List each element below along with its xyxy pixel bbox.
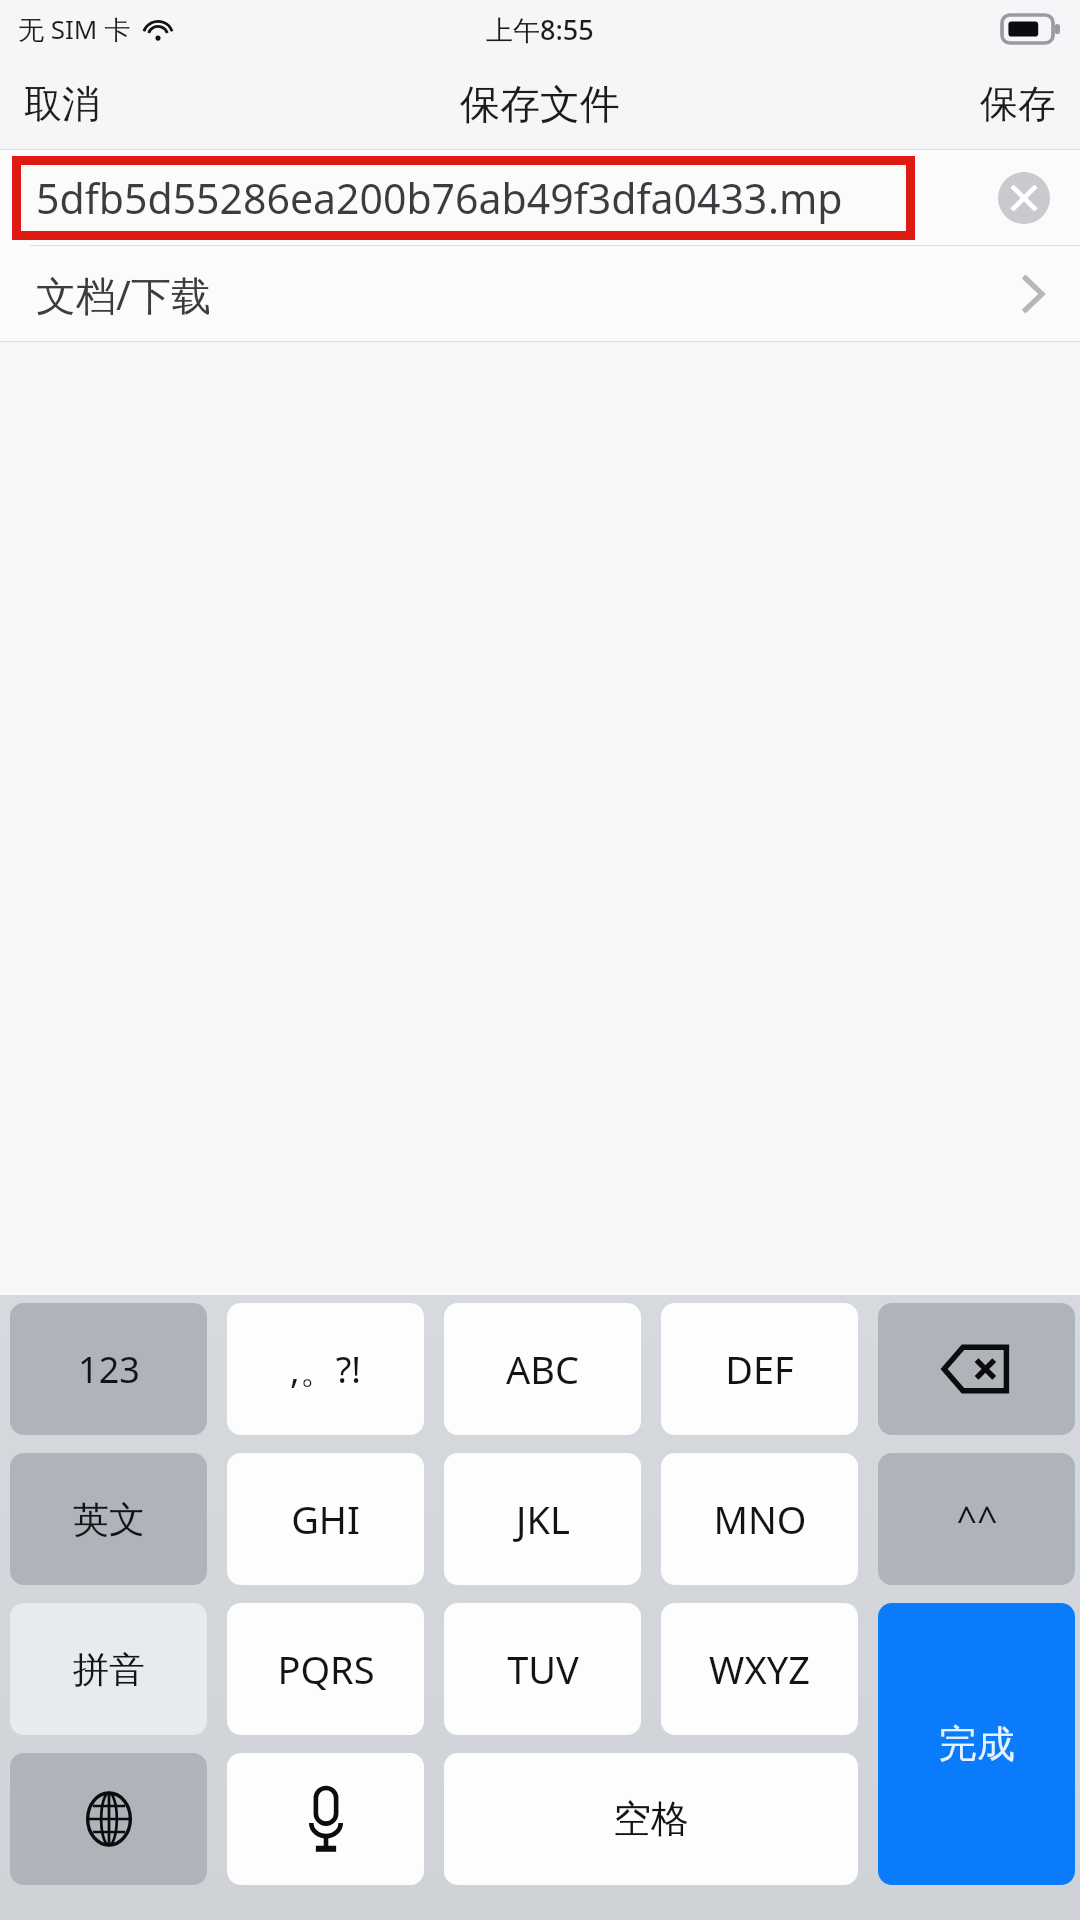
staticText: 上午8:55 <box>486 11 594 48</box>
staticText: WXYZ <box>709 1643 810 1695</box>
button[interactable]: GHI <box>227 1453 424 1585</box>
staticText: TUV <box>507 1643 579 1695</box>
button[interactable]: DEF <box>661 1303 858 1435</box>
button[interactable]: 123 <box>10 1303 207 1435</box>
staticText: GHI <box>291 1493 360 1545</box>
staticText: 无 SIM 卡 <box>18 11 131 47</box>
staticText: 完成 <box>939 1720 1015 1768</box>
staticText: PQRS <box>277 1643 375 1695</box>
staticText: .mp <box>768 170 843 226</box>
staticText: 保存文件 <box>460 79 620 129</box>
staticText: 123 <box>78 1345 140 1394</box>
staticText: DEF <box>725 1343 794 1395</box>
staticText: 取消 <box>24 80 100 128</box>
staticText: 拼音 <box>73 1647 145 1692</box>
button[interactable]: Clear text <box>998 172 1050 224</box>
staticText: 英文 <box>73 1497 145 1542</box>
staticText: 5dfb5d55286ea200b76ab49f3dfa0433 <box>36 170 768 226</box>
button[interactable]: Backspace <box>878 1303 1075 1435</box>
button[interactable]: 完成 <box>878 1603 1075 1885</box>
button[interactable]: MNO <box>661 1453 858 1585</box>
button[interactable]: WXYZ <box>661 1603 858 1735</box>
button[interactable]: 空格 <box>444 1753 858 1885</box>
button[interactable]: ,。?! <box>227 1303 424 1435</box>
staticText: 空格 <box>613 1795 689 1843</box>
staticText: ABC <box>506 1343 579 1395</box>
button[interactable]: 文档/下载 <box>0 246 1080 342</box>
staticText: 保存 <box>980 80 1056 128</box>
staticText: MNO <box>713 1493 807 1545</box>
button[interactable]: Change keyboard <box>10 1753 207 1885</box>
staticText: ^^ <box>956 1495 998 1544</box>
button[interactable]: TUV <box>444 1603 641 1735</box>
button[interactable]: Voice input <box>227 1753 424 1885</box>
button[interactable]: ABC <box>444 1303 641 1435</box>
button[interactable]: 取消 <box>0 66 124 142</box>
staticText: ,。?! <box>290 1345 361 1394</box>
button[interactable]: 保存 <box>956 66 1080 142</box>
staticText: JKL <box>516 1493 570 1545</box>
button[interactable]: 拼音 <box>10 1603 207 1735</box>
button[interactable]: ^^ <box>878 1453 1075 1585</box>
button[interactable]: 5dfb5d55286ea200b76ab49f3dfa0433 <box>0 150 1080 246</box>
staticText: 文档/下载 <box>36 267 211 322</box>
button[interactable]: PQRS <box>227 1603 424 1735</box>
button[interactable]: JKL <box>444 1453 641 1585</box>
button[interactable]: 英文 <box>10 1453 207 1585</box>
